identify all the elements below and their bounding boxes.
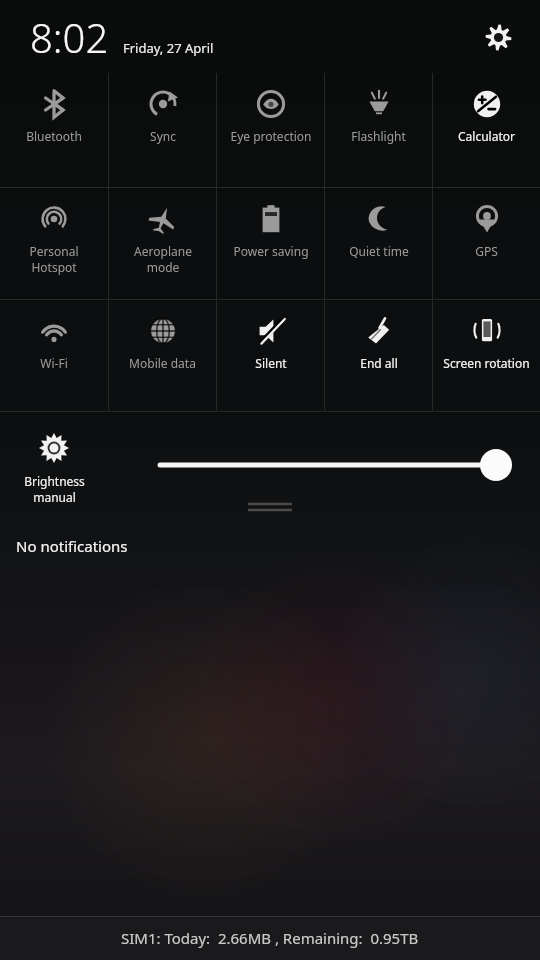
staticText: Personal Hotspot xyxy=(29,243,79,275)
staticText: Calculator xyxy=(458,128,515,144)
button[interactable]: GPS xyxy=(433,188,540,300)
button[interactable]: Brightness slider xyxy=(150,450,520,480)
staticText: Eye protection xyxy=(230,128,312,144)
staticText: Aeroplane mode xyxy=(134,243,192,275)
staticText: Brightness manual xyxy=(24,473,85,505)
button[interactable]: Sync xyxy=(109,73,216,188)
button[interactable]: Wi-Fi xyxy=(0,300,108,412)
button[interactable]: Quiet time xyxy=(325,188,432,300)
button[interactable]: Bluetooth xyxy=(0,73,108,188)
button[interactable]: Aeroplane mode xyxy=(109,188,216,300)
button[interactable]: Silent xyxy=(217,300,324,412)
staticText: Wi-Fi xyxy=(40,355,68,371)
button[interactable]: Eye protection xyxy=(217,73,324,188)
staticText: Screen rotation xyxy=(443,355,530,371)
staticText: 8:02 xyxy=(30,10,109,64)
staticText: Quiet time xyxy=(349,243,409,259)
button[interactable]: Mobile data xyxy=(109,300,216,412)
button[interactable]: Brightness manual xyxy=(0,432,108,505)
button[interactable]: End all xyxy=(325,300,432,412)
button[interactable]: Screen rotation xyxy=(433,300,540,412)
staticText: Bluetooth xyxy=(26,128,82,144)
staticText: Flashlight xyxy=(351,128,406,144)
staticText: Friday, 27 April xyxy=(123,39,214,57)
staticText: Silent xyxy=(255,355,287,371)
staticText: Power saving xyxy=(233,243,309,259)
button[interactable]: Settings xyxy=(476,15,520,59)
staticText: End all xyxy=(360,355,398,371)
button[interactable]: Power saving xyxy=(217,188,324,300)
staticText: Mobile data xyxy=(129,355,196,371)
staticText: Sync xyxy=(150,128,176,144)
staticText: SIM1: Today: 2.66MB , Remaining: 0.95TB xyxy=(121,928,419,948)
button[interactable]: Personal Hotspot xyxy=(0,188,108,300)
button[interactable]: Flashlight xyxy=(325,73,432,188)
button[interactable]: Calculator xyxy=(433,73,540,188)
staticText: No notifications xyxy=(16,536,128,556)
button[interactable]: SIM1: Today: 2.66MB , Remaining: 0.95TB xyxy=(0,916,540,960)
staticText: GPS xyxy=(475,243,498,259)
